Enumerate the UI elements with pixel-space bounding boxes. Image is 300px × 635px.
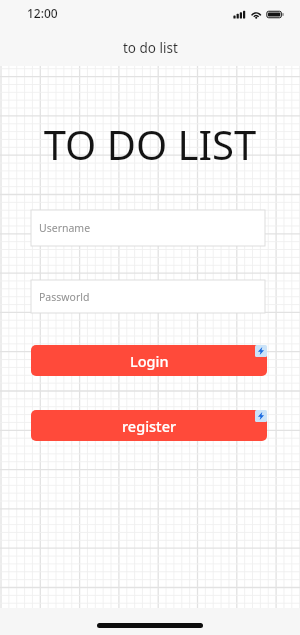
button[interactable]: register: [31, 410, 267, 441]
button[interactable]: Autofill: [255, 345, 267, 357]
button[interactable]: Autofill: [255, 410, 267, 422]
staticText: Login: [130, 351, 169, 371]
staticText: register: [122, 416, 177, 436]
button[interactable]: Username: [31, 210, 265, 246]
staticText: to do list: [123, 39, 178, 57]
staticText: TO DO LIST: [0, 117, 300, 171]
button[interactable]: Login: [31, 345, 267, 376]
staticText: 12:00: [27, 5, 58, 21]
staticText: Passworld: [39, 290, 90, 304]
staticText: Username: [39, 221, 91, 235]
button[interactable]: Passworld: [31, 280, 265, 313]
